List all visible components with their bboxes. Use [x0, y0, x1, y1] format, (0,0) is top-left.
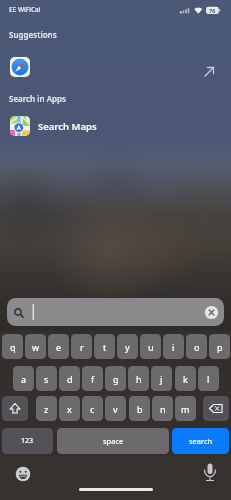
- staticText: b: [137, 403, 143, 415]
- button[interactable]: space: [57, 428, 169, 454]
- staticText: k: [183, 373, 188, 385]
- staticText: v: [113, 403, 118, 415]
- button[interactable]: Search Maps: [0, 112, 231, 142]
- button[interactable]: e: [48, 334, 69, 359]
- staticText: q: [10, 341, 16, 353]
- staticText: l: [207, 373, 210, 385]
- staticText: d: [67, 373, 73, 385]
- staticText: f: [91, 373, 95, 385]
- staticText: EE WiFiCal: [9, 5, 41, 14]
- button[interactable]: a: [13, 366, 34, 391]
- staticText: w: [32, 341, 40, 353]
- button[interactable]: m: [175, 396, 196, 421]
- staticText: a: [21, 373, 27, 385]
- button[interactable]: y: [117, 334, 138, 359]
- staticText: x: [67, 403, 72, 415]
- staticText: p: [217, 341, 223, 353]
- button[interactable]: r: [71, 334, 92, 359]
- staticText: Search in Apps: [9, 93, 67, 104]
- staticText: j: [160, 373, 163, 385]
- staticText: h: [136, 373, 142, 385]
- staticText: g: [113, 373, 119, 385]
- button[interactable]: j: [151, 366, 172, 391]
- button[interactable]: f: [82, 366, 103, 391]
- staticText: Suggestions: [9, 29, 57, 40]
- button[interactable]: b: [129, 396, 150, 421]
- staticText: Search Maps: [38, 120, 97, 133]
- button[interactable]: n: [152, 396, 173, 421]
- button[interactable]: [196, 460, 224, 488]
- button[interactable]: [9, 460, 37, 488]
- staticText: o: [194, 341, 200, 353]
- staticText: i: [172, 341, 175, 353]
- staticText: u: [148, 341, 154, 353]
- staticText: search: [189, 436, 213, 446]
- button[interactable]: g: [105, 366, 126, 391]
- button[interactable]: p: [209, 334, 230, 359]
- button[interactable]: [7, 298, 224, 326]
- button[interactable]: d: [59, 366, 80, 391]
- button[interactable]: x: [59, 396, 80, 421]
- button[interactable]: [0, 52, 231, 82]
- button[interactable]: t: [94, 334, 115, 359]
- button[interactable]: o: [186, 334, 207, 359]
- button[interactable]: s: [36, 366, 57, 391]
- button[interactable]: v: [105, 396, 126, 421]
- button[interactable]: l: [198, 366, 219, 391]
- button[interactable]: search: [172, 428, 229, 454]
- staticText: 123: [21, 436, 34, 446]
- button[interactable]: 123: [2, 428, 53, 454]
- button[interactable]: h: [128, 366, 149, 391]
- button[interactable]: [203, 396, 229, 421]
- button[interactable]: u: [140, 334, 161, 359]
- button[interactable]: k: [175, 366, 196, 391]
- button[interactable]: q: [2, 334, 23, 359]
- staticText: r: [80, 341, 84, 353]
- button[interactable]: [2, 396, 28, 421]
- staticText: y: [125, 341, 130, 353]
- button[interactable]: i: [163, 334, 184, 359]
- staticText: n: [160, 403, 166, 415]
- staticText: space: [103, 436, 124, 446]
- staticText: c: [90, 403, 95, 415]
- staticText: m: [181, 403, 190, 415]
- staticText: e: [56, 341, 62, 353]
- staticText: s: [44, 373, 49, 385]
- staticText: z: [44, 403, 49, 415]
- button[interactable]: z: [36, 396, 57, 421]
- button[interactable]: w: [25, 334, 46, 359]
- staticText: t: [103, 341, 107, 353]
- button[interactable]: c: [82, 396, 103, 421]
- staticText: 76: [209, 7, 216, 14]
